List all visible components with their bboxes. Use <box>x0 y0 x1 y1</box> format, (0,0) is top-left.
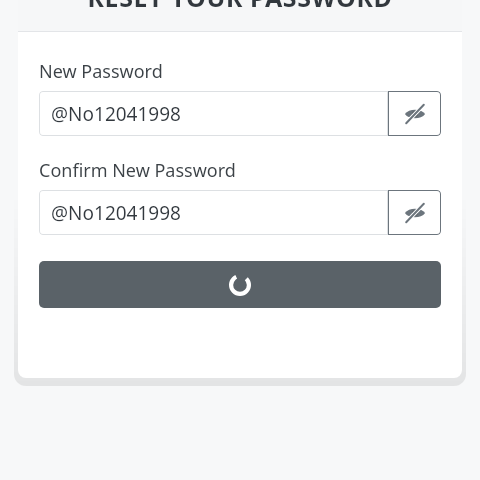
button[interactable]: Toggle password visibility <box>388 190 441 235</box>
staticText: @No12041998 <box>51 101 181 127</box>
staticText: RESET YOUR PASSWORD <box>18 0 462 14</box>
button[interactable]: @No12041998 <box>39 190 388 235</box>
button[interactable]: Submit, loading <box>39 261 441 308</box>
button[interactable]: @No12041998 <box>39 91 388 136</box>
staticText: New Password <box>39 59 163 84</box>
staticText: Confirm New Password <box>39 158 236 183</box>
button[interactable]: Toggle password visibility <box>388 91 441 136</box>
staticText: @No12041998 <box>51 200 181 226</box>
